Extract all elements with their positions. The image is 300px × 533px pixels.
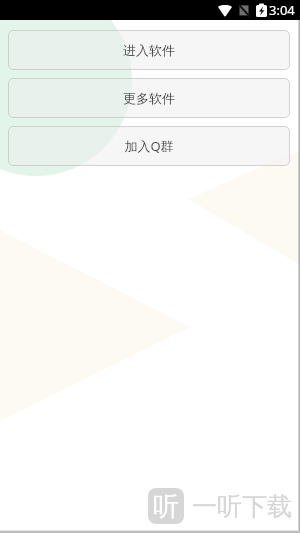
staticText: 一听下载 xyxy=(192,491,292,522)
staticText: 听 xyxy=(153,490,179,523)
button[interactable]: 进入软件 xyxy=(8,30,290,70)
button[interactable]: 更多软件 xyxy=(8,78,290,118)
staticText: 3:04 xyxy=(269,1,295,19)
staticText: 更多软件 xyxy=(123,90,175,106)
staticText: 加入Q群 xyxy=(124,137,174,155)
button[interactable]: 加入Q群 xyxy=(8,126,290,166)
staticText: 进入软件 xyxy=(123,42,175,58)
